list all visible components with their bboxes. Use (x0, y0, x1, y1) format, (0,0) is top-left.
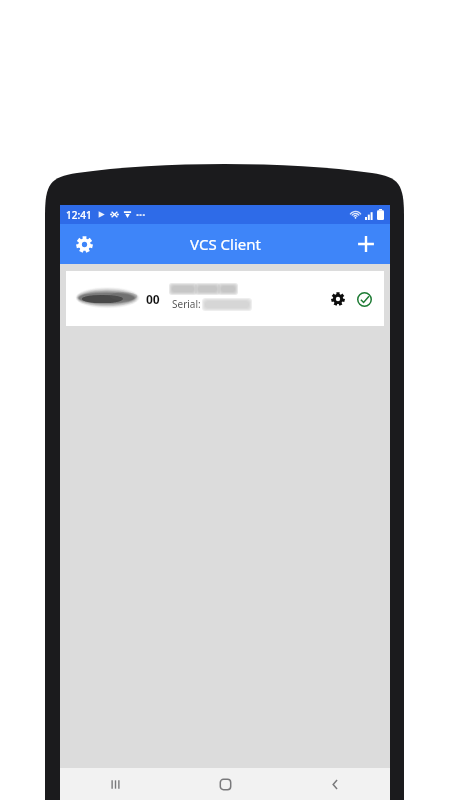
button[interactable]: 00 (66, 271, 384, 326)
button[interactable]: Settings (68, 228, 100, 260)
button[interactable]: Device settings (326, 287, 350, 311)
button[interactable]: Add device (350, 228, 382, 260)
button[interactable]: Connected (352, 287, 376, 311)
staticText: VCS Client (190, 234, 261, 254)
staticText: 12:41 (66, 208, 92, 222)
button[interactable]: Home (170, 768, 280, 800)
staticText: ··· (136, 207, 146, 222)
button[interactable]: Back (280, 768, 390, 800)
staticText: 00 (146, 291, 160, 307)
button[interactable]: Recents (60, 768, 170, 800)
staticText: Serial: (172, 297, 201, 311)
